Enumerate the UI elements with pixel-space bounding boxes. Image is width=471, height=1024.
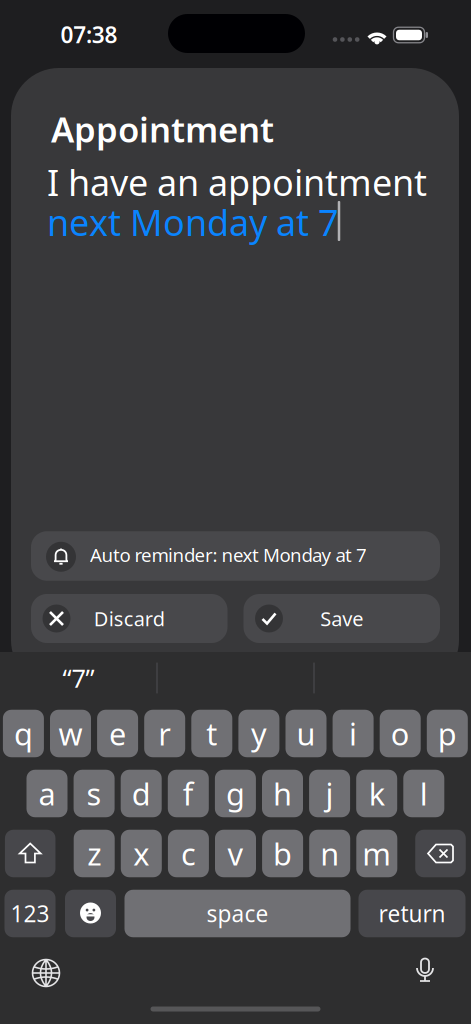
staticText: i — [349, 713, 357, 754]
staticText: c — [181, 833, 196, 874]
button[interactable]: m — [356, 830, 397, 877]
button[interactable]: space — [124, 890, 350, 937]
button[interactable]: f — [168, 770, 209, 817]
staticText: t — [206, 713, 217, 754]
button[interactable]: j — [309, 770, 350, 817]
staticText: return — [378, 898, 445, 928]
button[interactable]: x — [121, 830, 162, 877]
staticText: o — [391, 713, 410, 754]
button[interactable]: o — [380, 710, 421, 757]
staticText: Auto reminder: next Monday at 7 — [90, 542, 367, 567]
staticText: j — [326, 773, 334, 814]
staticText: m — [362, 833, 391, 874]
staticText: q — [14, 713, 33, 754]
button[interactable]: Discard — [31, 594, 227, 643]
button[interactable]: h — [262, 770, 303, 817]
staticText: I have an appointment — [47, 158, 427, 206]
button[interactable]: z — [74, 830, 115, 877]
button[interactable]: 123 — [4, 890, 55, 937]
staticText: g — [226, 773, 245, 814]
button[interactable]: r — [144, 710, 185, 757]
staticText: e — [109, 713, 126, 754]
button[interactable]: t — [191, 710, 232, 757]
staticText: v — [227, 833, 243, 874]
staticText: a — [38, 773, 55, 814]
button[interactable]: a — [26, 770, 67, 817]
button[interactable]: k — [356, 770, 397, 817]
staticText: z — [87, 833, 101, 874]
staticText: p — [438, 713, 457, 754]
button[interactable]: Dictation — [413, 956, 437, 988]
button[interactable]: return — [358, 890, 465, 937]
button[interactable]: l — [403, 770, 444, 817]
button[interactable]: w — [50, 710, 91, 757]
button[interactable]: d — [121, 770, 162, 817]
staticText: w — [58, 713, 82, 754]
button[interactable]: Emoji — [65, 890, 116, 937]
staticText: n — [320, 833, 339, 874]
staticText: l — [420, 773, 428, 814]
button[interactable]: Next keyboard — [31, 958, 61, 988]
button[interactable]: p — [427, 710, 468, 757]
staticText: y — [251, 713, 267, 754]
staticText: u — [296, 713, 315, 754]
staticText: Appointment — [51, 106, 274, 152]
staticText: next Monday at 7 — [47, 198, 339, 246]
button[interactable]: Auto reminder: next Monday at 7 — [31, 531, 440, 581]
button[interactable]: u — [285, 710, 326, 757]
staticText: s — [87, 773, 102, 814]
button[interactable]: i — [333, 710, 374, 757]
staticText: d — [132, 773, 151, 814]
staticText: h — [273, 773, 292, 814]
button[interactable]: Delete — [415, 830, 466, 877]
staticText: 07:38 — [61, 19, 117, 49]
staticText: space — [206, 898, 268, 928]
staticText: x — [133, 833, 149, 874]
staticText: f — [183, 773, 194, 814]
button[interactable]: Shift — [5, 830, 55, 877]
staticText: k — [369, 773, 385, 814]
button[interactable]: n — [309, 830, 350, 877]
staticText: Save — [320, 605, 363, 632]
staticText: 123 — [10, 898, 49, 928]
button[interactable]: s — [74, 770, 115, 817]
button[interactable]: c — [168, 830, 209, 877]
button[interactable]: g — [215, 770, 256, 817]
staticText: r — [158, 713, 171, 754]
staticText: Discard — [94, 605, 165, 632]
button[interactable]: q — [3, 710, 44, 757]
button[interactable]: y — [238, 710, 279, 757]
button[interactable]: “7” — [0, 656, 157, 700]
staticText: b — [273, 833, 292, 874]
button[interactable]: e — [97, 710, 138, 757]
button[interactable]: Save — [243, 594, 440, 643]
button[interactable]: b — [262, 830, 303, 877]
button[interactable]: v — [215, 830, 256, 877]
staticText: “7” — [62, 661, 94, 695]
